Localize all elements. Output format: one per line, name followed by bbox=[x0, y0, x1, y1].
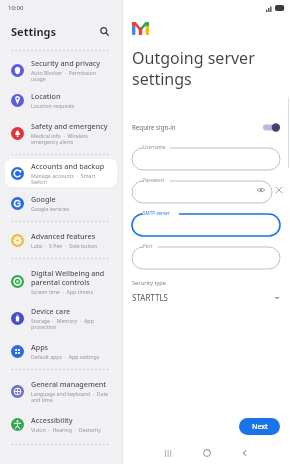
staticText: STARTTLS bbox=[132, 292, 169, 303]
button[interactable]: Apps bbox=[5, 337, 117, 365]
staticText: SMTP server bbox=[143, 210, 170, 216]
staticText: Default apps · App settings bbox=[31, 353, 100, 360]
staticText: Password bbox=[143, 177, 164, 183]
staticText: Advanced features bbox=[31, 231, 96, 241]
staticText: Location bbox=[31, 91, 61, 101]
button[interactable]: Port bbox=[132, 243, 280, 269]
button[interactable]: Digital Wellbeing and parental controls bbox=[5, 263, 117, 299]
button[interactable]: Password bbox=[132, 177, 272, 203]
button[interactable]: Home bbox=[198, 444, 216, 462]
staticText: Require sign-in bbox=[132, 123, 176, 131]
button[interactable]: Google bbox=[5, 189, 117, 217]
button[interactable]: Accessibility bbox=[5, 410, 117, 438]
staticText: Apps bbox=[31, 342, 49, 352]
button[interactable]: Username bbox=[132, 144, 280, 170]
staticText: Port bbox=[143, 243, 153, 249]
button[interactable]: Accounts and backup bbox=[5, 159, 117, 187]
staticText: Medical info · Wireless emergency alerts bbox=[31, 132, 111, 145]
staticText: Location requests bbox=[31, 102, 75, 109]
button[interactable]: Location bbox=[5, 86, 117, 114]
staticText: Google bbox=[31, 194, 56, 204]
button[interactable]: SMTP server bbox=[132, 210, 280, 236]
staticText: Accounts and backup bbox=[31, 161, 105, 171]
staticText: Manage accounts · Smart Switch bbox=[31, 172, 111, 185]
staticText: Storage · Memory · App protection bbox=[31, 317, 111, 330]
staticText: Settings bbox=[11, 24, 57, 39]
staticText: 10:00 bbox=[8, 4, 24, 12]
button[interactable]: Security and privacy bbox=[5, 56, 117, 84]
staticText: Digital Wellbeing and parental controls bbox=[31, 268, 111, 287]
button[interactable]: Clear password bbox=[272, 183, 286, 197]
button[interactable]: Recent apps bbox=[159, 444, 177, 462]
staticText: Language and keyboard · Date and time bbox=[31, 390, 111, 403]
staticText: Accessibility bbox=[31, 415, 73, 425]
button[interactable]: General management bbox=[5, 374, 117, 408]
staticText: Device care bbox=[31, 306, 71, 316]
button[interactable]: Advanced features bbox=[5, 226, 117, 254]
button[interactable]: Device care bbox=[5, 301, 117, 335]
staticText: Next bbox=[252, 422, 268, 432]
staticText: Username bbox=[143, 144, 166, 150]
button[interactable]: Show password bbox=[256, 185, 266, 195]
staticText: Auto Blocker · Permission usage bbox=[31, 69, 111, 82]
staticText: Outgoing server settings bbox=[132, 47, 255, 90]
staticText: Security type bbox=[132, 279, 166, 287]
button[interactable]: Search settings bbox=[95, 22, 113, 40]
staticText: Screen time · App timers bbox=[31, 288, 94, 295]
button[interactable]: Next bbox=[239, 418, 280, 435]
staticText: General management bbox=[31, 379, 107, 389]
button[interactable]: Security type bbox=[123, 279, 290, 303]
staticText: Vision · Hearing · Dexterity bbox=[31, 426, 101, 433]
staticText: Safety and emergency bbox=[31, 121, 108, 131]
button[interactable]: Require sign-in bbox=[123, 116, 290, 138]
button[interactable]: Safety and emergency bbox=[5, 116, 117, 150]
button[interactable]: Back bbox=[236, 444, 254, 462]
staticText: Labs · S Pen · Side button bbox=[31, 242, 98, 249]
staticText: Security and privacy bbox=[31, 58, 101, 68]
staticText: Google services bbox=[31, 205, 70, 212]
